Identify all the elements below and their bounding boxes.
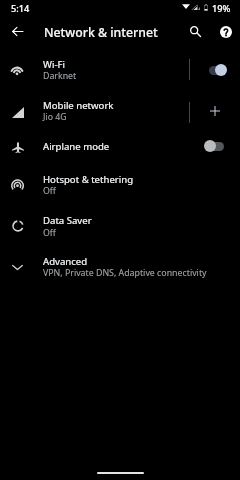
staticText: 5:14: [11, 2, 30, 15]
staticText: VPN, Private DNS, Adaptive connectivity: [43, 267, 207, 279]
button[interactable]: Wi-Fi: [200, 60, 234, 80]
button[interactable]: Home: [97, 472, 144, 474]
staticText: Advanced: [43, 255, 88, 268]
button[interactable]: Help and feedback: [213, 19, 238, 44]
staticText: Mobile network: [43, 99, 114, 112]
staticText: Data Saver: [43, 214, 92, 227]
staticText: Hotspot & tethering: [43, 173, 134, 186]
button[interactable]: Hotspot & tethering: [0, 166, 240, 203]
staticText: Jio 4G: [43, 111, 67, 123]
button[interactable]: Advanced: [0, 247, 240, 284]
button[interactable]: Data Saver: [0, 207, 240, 244]
button[interactable]: Navigate up: [5, 19, 30, 44]
button[interactable]: Add network: [205, 101, 225, 121]
staticText: Off: [43, 227, 56, 239]
staticText: 19%: [212, 2, 231, 15]
button[interactable]: Airplane mode: [200, 136, 234, 156]
staticText: Darknet: [43, 70, 77, 82]
staticText: Wi-Fi: [43, 58, 65, 71]
button[interactable]: Mobile network: [0, 92, 240, 129]
button[interactable]: Wi-Fi: [0, 51, 240, 88]
button[interactable]: Airplane mode: [0, 131, 240, 161]
staticText: Off: [43, 185, 56, 197]
staticText: Network & internet: [44, 24, 158, 41]
staticText: Airplane mode: [43, 140, 110, 153]
button[interactable]: Search: [183, 19, 208, 44]
